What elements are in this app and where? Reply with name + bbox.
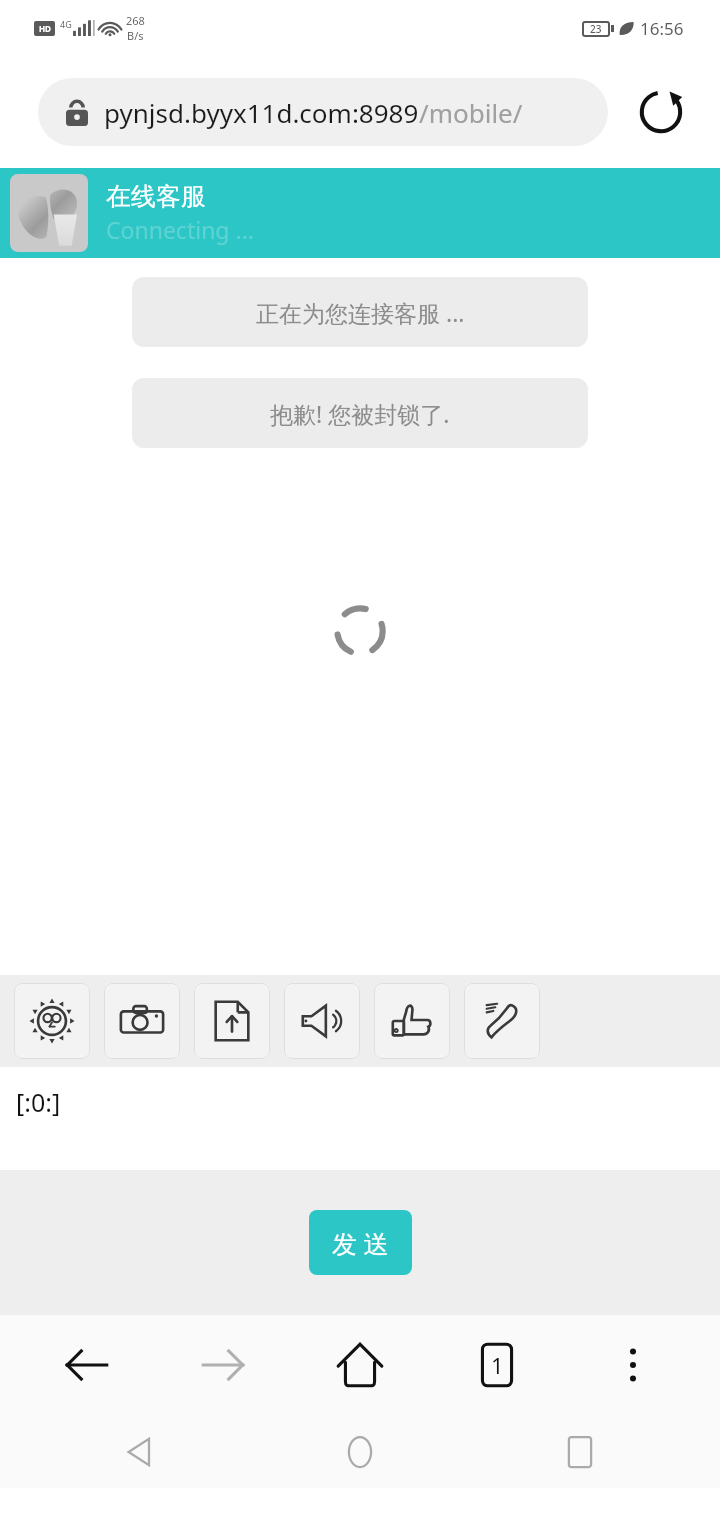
button[interactable]: 抱歉! 您被封锁了.: [132, 378, 588, 448]
button[interactable]: Home: [280, 1415, 440, 1488]
button[interactable]: 正在为您连接客服 ...: [132, 277, 588, 347]
button[interactable]: Reload: [630, 81, 692, 143]
staticText: 在线客服: [106, 181, 206, 212]
button[interactable]: 发 送: [309, 1210, 412, 1275]
button[interactable]: Back: [37, 1320, 137, 1410]
button[interactable]: Tabs: [447, 1320, 547, 1410]
staticText: 16:56: [640, 17, 684, 40]
button[interactable]: 在线客服: [0, 168, 720, 258]
staticText: 正在为您连接客服 ...: [256, 297, 465, 328]
staticText: Connecting ...: [106, 214, 254, 245]
staticText: 发 送: [332, 1226, 389, 1260]
staticText: [:0:]: [16, 1085, 61, 1119]
button[interactable]: Home: [310, 1320, 410, 1410]
button[interactable]: Call: [464, 983, 540, 1059]
staticText: /mobile/: [419, 95, 523, 130]
staticText: 268: [126, 13, 145, 28]
button[interactable]: Recents: [500, 1415, 660, 1488]
button[interactable]: More options: [583, 1320, 683, 1410]
staticText: 1: [491, 1350, 504, 1380]
button[interactable]: Like: [374, 983, 450, 1059]
button[interactable]: [:0:]: [0, 1067, 720, 1170]
button[interactable]: pynjsd.byyx11d.com:8989: [38, 78, 608, 146]
button[interactable]: Camera: [104, 983, 180, 1059]
button[interactable]: Forward: [173, 1320, 273, 1410]
button[interactable]: Back: [60, 1415, 220, 1488]
staticText: pynjsd.byyx11d.com:8989: [104, 95, 419, 130]
staticText: 抱歉! 您被封锁了.: [270, 398, 450, 429]
staticText: HD: [39, 23, 51, 34]
staticText: B/s: [127, 28, 144, 43]
button[interactable]: Upload file: [194, 983, 270, 1059]
staticText: 23: [590, 22, 602, 36]
staticText: 4G: [60, 18, 72, 30]
button[interactable]: Emoji: [14, 983, 90, 1059]
button[interactable]: Voice: [284, 983, 360, 1059]
